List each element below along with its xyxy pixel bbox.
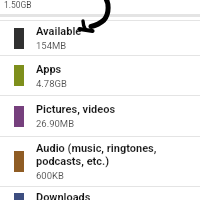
- staticText: 4.78GB: [36, 78, 67, 89]
- staticText: Audio (music, ringtones, podcasts, etc.): [36, 142, 192, 168]
- button[interactable]: Apps: [0, 55, 200, 95]
- staticText: Pictures, videos: [36, 103, 116, 116]
- button[interactable]: Available: [0, 20, 200, 55]
- staticText: Downloads: [36, 191, 91, 200]
- staticText: 600KB: [36, 170, 64, 181]
- button[interactable]: Audio (music, ringtones, podcasts, etc.): [0, 136, 200, 186]
- button[interactable]: Downloads: [0, 186, 200, 200]
- staticText: 1.50GB: [4, 0, 32, 10]
- staticText: Available: [36, 25, 82, 38]
- staticText: 154MB: [36, 40, 67, 51]
- staticText: Apps: [36, 63, 62, 76]
- button[interactable]: Pictures, videos: [0, 95, 200, 136]
- staticText: 26.90MB: [36, 118, 75, 129]
